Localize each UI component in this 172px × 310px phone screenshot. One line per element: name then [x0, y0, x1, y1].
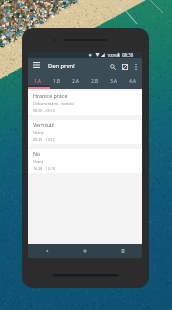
button[interactable]: 1.A: [28, 75, 47, 89]
button[interactable]: Hide watched: [119, 60, 130, 73]
staticText: Dokumentární - domácí: [33, 101, 74, 106]
button[interactable]: No: [28, 149, 142, 173]
staticText: Hraný: [33, 159, 44, 164]
button[interactable]: 3.A: [104, 75, 123, 89]
button[interactable]: Back: [28, 244, 66, 258]
staticText: Hranice práce: [33, 92, 68, 99]
button[interactable]: 2.B: [85, 75, 104, 89]
button[interactable]: Open navigation menu: [31, 58, 42, 71]
staticText: Den první: [48, 62, 75, 70]
staticText: 1.A: [34, 78, 41, 84]
button[interactable]: 2.A: [66, 75, 85, 89]
button[interactable]: Search: [107, 60, 118, 73]
button[interactable]: 1.B: [47, 75, 66, 89]
staticText: 2.A: [72, 78, 79, 84]
staticText: 08:30: [122, 52, 134, 58]
button[interactable]: Home: [66, 244, 104, 258]
button[interactable]: Vernisáž: [28, 120, 142, 144]
staticText: 100%: [107, 53, 118, 58]
staticText: 10:28 - 12:18: [33, 166, 55, 171]
staticText: Hraný: [33, 130, 44, 135]
staticText: 1.B: [53, 78, 60, 84]
staticText: 3.A: [110, 78, 117, 84]
staticText: 09:25 - 10:12: [33, 137, 55, 142]
staticText: Vernisáž: [33, 121, 54, 128]
staticText: 4.A: [129, 78, 136, 84]
button[interactable]: 4.A: [123, 75, 142, 89]
staticText: 2.B: [91, 78, 98, 84]
button[interactable]: Recent apps: [104, 244, 142, 258]
button[interactable]: More options: [131, 60, 140, 73]
staticText: 08:00 - 09:10: [33, 108, 55, 113]
button[interactable]: Hranice práce: [28, 91, 142, 115]
staticText: No: [33, 150, 41, 157]
